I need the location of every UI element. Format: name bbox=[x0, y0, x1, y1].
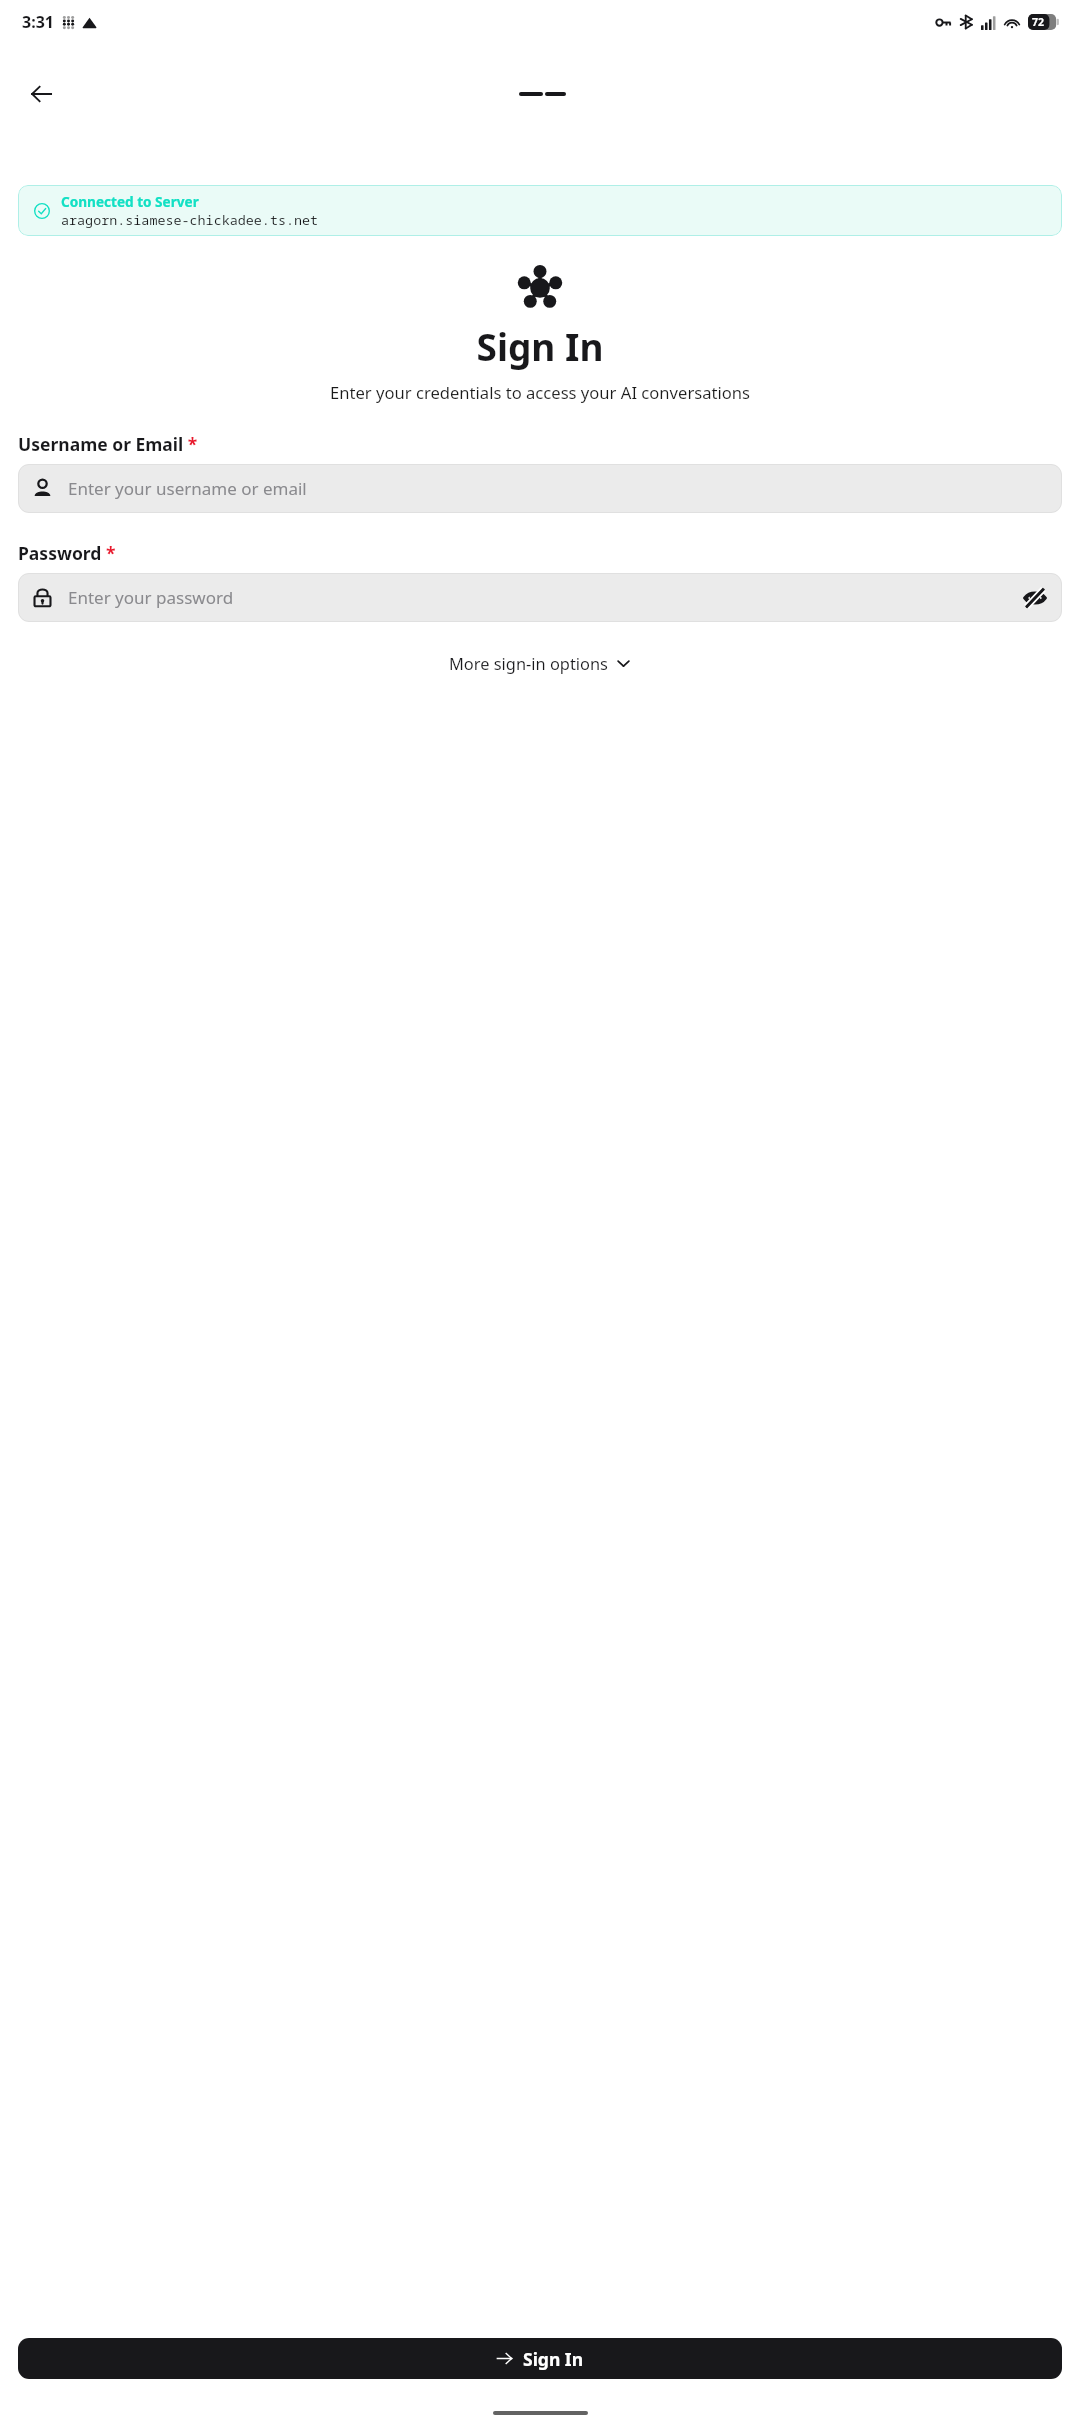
staticText: More sign-in options bbox=[449, 652, 608, 674]
button[interactable]: Connected to Server bbox=[18, 185, 1062, 236]
staticText: aragorn.siamese-chickadee.ts.net bbox=[61, 211, 319, 229]
button[interactable]: Back bbox=[14, 66, 70, 122]
staticText: Sign In bbox=[523, 2347, 584, 2371]
staticText: Connected to Server bbox=[61, 192, 199, 211]
staticText: 72 bbox=[1032, 15, 1045, 29]
button[interactable]: Enter your username or email bbox=[18, 464, 1062, 513]
staticText: Sign In bbox=[0, 321, 1080, 371]
staticText: Enter your password bbox=[68, 586, 1022, 609]
button[interactable]: Enter your password bbox=[18, 573, 1062, 622]
staticText: Enter your username or email bbox=[68, 477, 1048, 500]
button[interactable]: Show password bbox=[1022, 585, 1048, 611]
staticText: Username or Email * bbox=[18, 432, 198, 456]
button[interactable]: More sign-in options bbox=[439, 646, 641, 680]
staticText: Password * bbox=[18, 541, 116, 565]
button[interactable]: Sign In bbox=[18, 2338, 1062, 2379]
staticText: Enter your credentials to access your AI… bbox=[44, 381, 1036, 404]
staticText: 3:31 bbox=[22, 11, 54, 33]
